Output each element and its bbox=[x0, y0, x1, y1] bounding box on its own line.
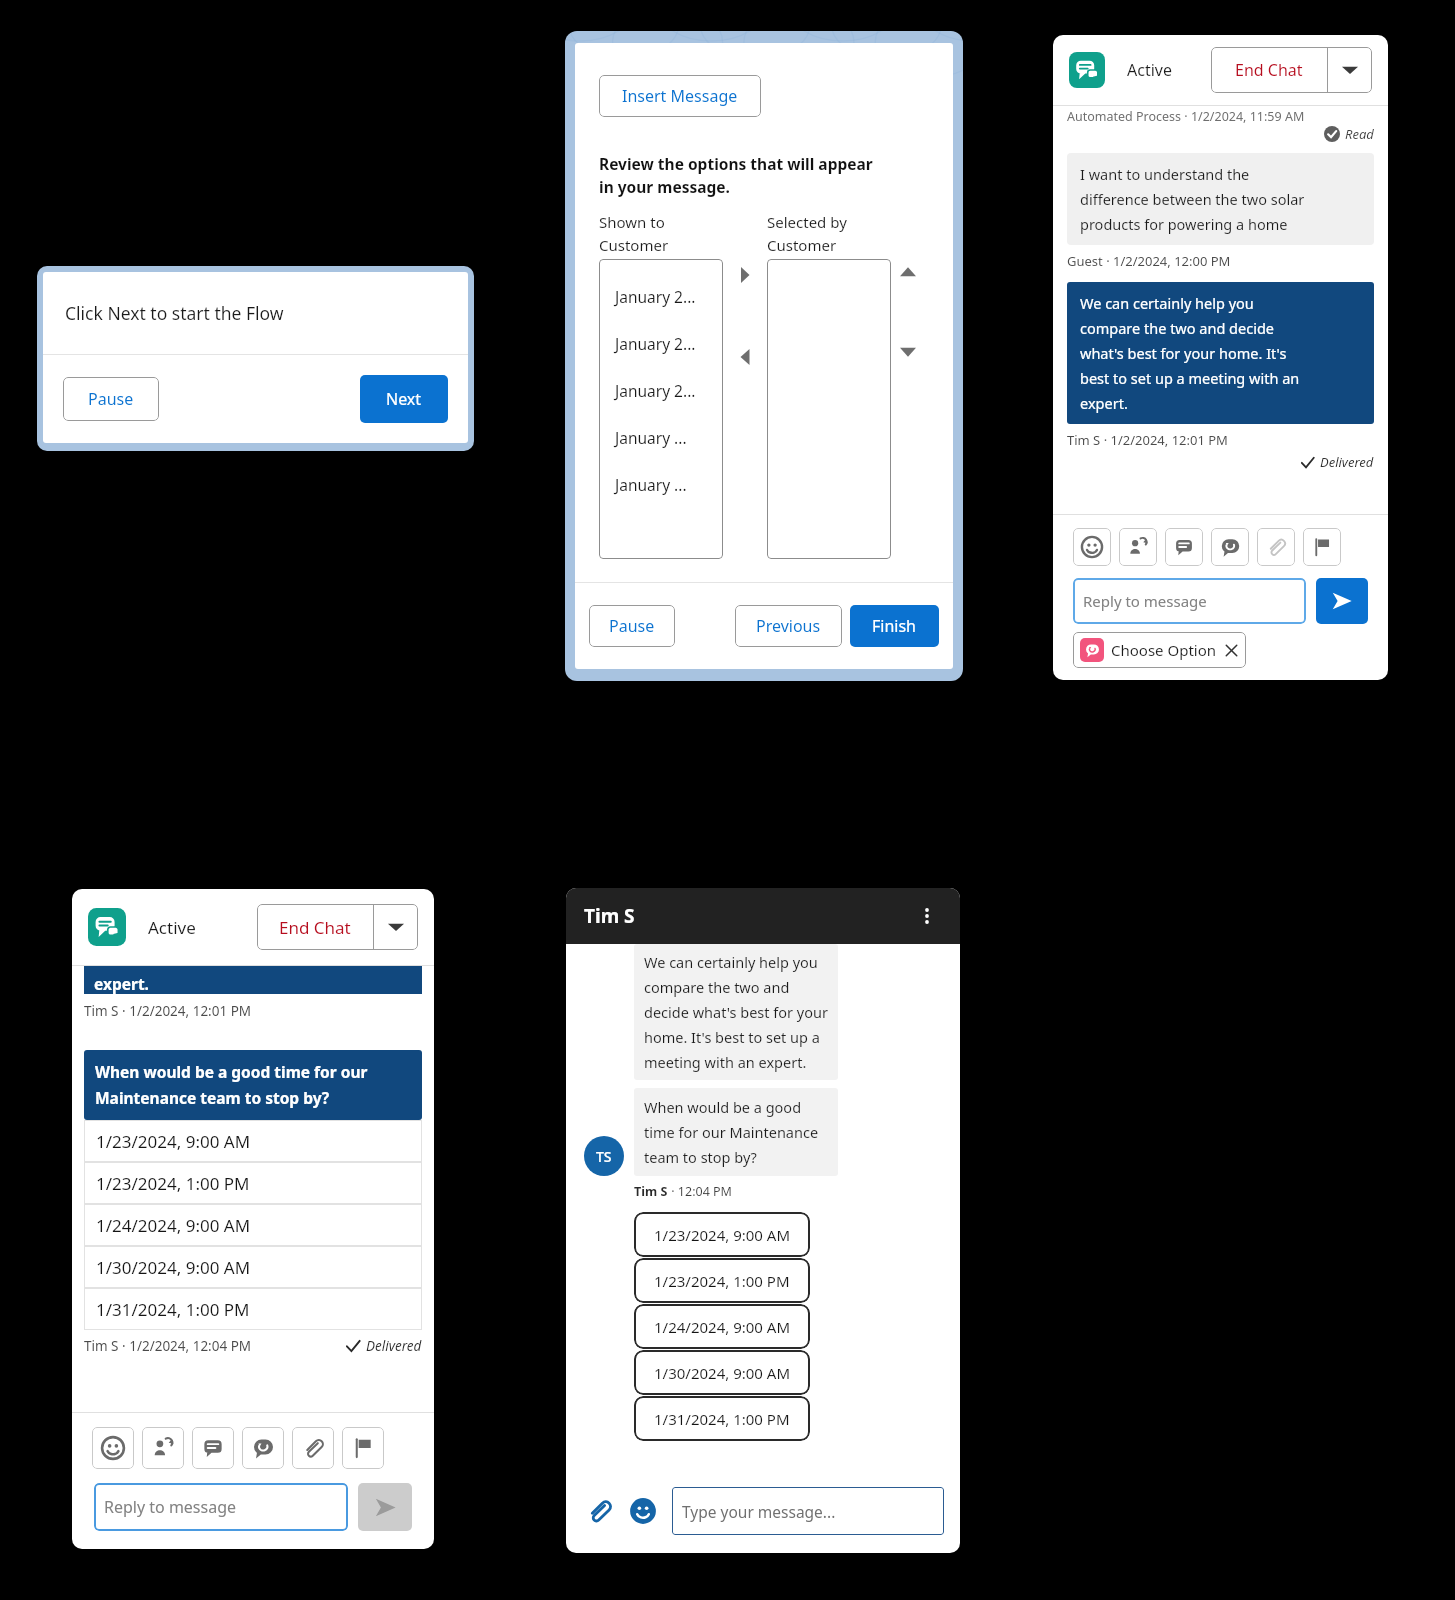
button[interactable]: Reply to message bbox=[104, 1483, 338, 1531]
staticText: 1/24/2024, 9:00 AM bbox=[654, 1317, 790, 1337]
button[interactable]: Previous bbox=[735, 605, 842, 647]
staticText: January 2... bbox=[615, 333, 696, 354]
staticText: Type your message... bbox=[682, 1501, 836, 1522]
button[interactable]: 1/24/2024, 9:00 AM bbox=[634, 1304, 810, 1349]
button[interactable]: 1/23/2024, 9:00 AM bbox=[634, 1212, 810, 1257]
staticText: expert. bbox=[94, 973, 149, 994]
staticText: Reply to message bbox=[1083, 591, 1207, 611]
staticText: 1/24/2024, 9:00 AM bbox=[96, 1214, 251, 1237]
button[interactable]: Flag bbox=[342, 1427, 384, 1469]
button[interactable]: Quick text bbox=[192, 1427, 234, 1469]
staticText: When would be a good time for our Mainte… bbox=[644, 1097, 819, 1167]
button[interactable]: Attach file bbox=[582, 1494, 616, 1528]
staticText: Delivered bbox=[366, 1337, 422, 1355]
staticText: 1/23/2024, 9:00 AM bbox=[654, 1225, 790, 1245]
staticText: Selected by Customer bbox=[767, 212, 847, 255]
staticText: Delivered bbox=[1320, 453, 1374, 471]
staticText: Tim S · 1/2/2024, 12:04 PM bbox=[84, 1337, 252, 1355]
button[interactable]: End Chat bbox=[1211, 47, 1327, 93]
button[interactable]: Next bbox=[360, 375, 448, 423]
staticText: Click Next to start the Flow bbox=[65, 301, 284, 325]
staticText: 1/23/2024, 9:00 AM bbox=[96, 1130, 251, 1153]
staticText: We can certainly help you compare the tw… bbox=[1080, 293, 1300, 413]
button[interactable]: Chat actions bbox=[1211, 528, 1249, 566]
staticText: End Chat bbox=[1235, 59, 1303, 81]
staticText: January 2... bbox=[615, 286, 696, 307]
button[interactable]: January ... bbox=[615, 461, 723, 508]
button[interactable]: Move up bbox=[896, 260, 920, 284]
button[interactable]: 1/23/2024, 9:00 AM bbox=[96, 1120, 422, 1162]
staticText: Automated Process · 1/2/2024, 11:59 AM bbox=[1067, 108, 1305, 125]
staticText: Previous bbox=[756, 615, 821, 637]
staticText: 1/30/2024, 9:00 AM bbox=[96, 1256, 251, 1279]
button[interactable]: 1/31/2024, 1:00 PM bbox=[96, 1288, 422, 1330]
staticText: January ... bbox=[615, 474, 687, 495]
button[interactable]: 1/23/2024, 1:00 PM bbox=[634, 1258, 810, 1303]
button[interactable]: Reply to message bbox=[1083, 578, 1296, 624]
staticText: We can certainly help you compare the tw… bbox=[644, 952, 828, 1072]
staticText: Tim S · 1/2/2024, 12:01 PM bbox=[84, 1002, 252, 1020]
button[interactable]: Finish bbox=[850, 605, 939, 647]
button[interactable]: End Chat bbox=[257, 904, 373, 950]
staticText: 1/30/2024, 9:00 AM bbox=[654, 1363, 790, 1383]
button[interactable]: Attach file bbox=[1257, 528, 1295, 566]
staticText: · 12:04 PM bbox=[668, 1183, 732, 1200]
staticText: 1/23/2024, 1:00 PM bbox=[654, 1271, 790, 1291]
button[interactable]: Quick text bbox=[1165, 528, 1203, 566]
staticText: 1/31/2024, 1:00 PM bbox=[96, 1298, 250, 1321]
button[interactable]: Send bbox=[358, 1483, 412, 1531]
staticText: Tim S bbox=[634, 1183, 668, 1200]
button[interactable]: Emoji bbox=[1073, 528, 1111, 566]
button[interactable]: Move left bbox=[732, 344, 758, 370]
button[interactable]: Emoji bbox=[92, 1427, 134, 1469]
button[interactable]: Pause bbox=[589, 605, 675, 647]
staticText: I want to understand the difference betw… bbox=[1080, 164, 1305, 234]
staticText: TS bbox=[596, 1147, 612, 1166]
staticText: Read bbox=[1345, 125, 1374, 143]
button[interactable]: 1/24/2024, 9:00 AM bbox=[96, 1204, 422, 1246]
button[interactable]: January 2... bbox=[615, 320, 723, 367]
staticText: January ... bbox=[615, 427, 687, 448]
button[interactable]: 1/31/2024, 1:00 PM bbox=[634, 1396, 810, 1441]
button[interactable]: January ... bbox=[615, 414, 723, 461]
button[interactable]: Send bbox=[1316, 578, 1368, 624]
staticText: Reply to message bbox=[104, 1496, 237, 1518]
staticText: Finish bbox=[872, 615, 917, 637]
staticText: Pause bbox=[88, 388, 134, 410]
staticText: January 2... bbox=[615, 380, 696, 401]
staticText: Active bbox=[1127, 59, 1172, 81]
staticText: Active bbox=[148, 916, 196, 939]
staticText: Insert Message bbox=[622, 85, 738, 107]
staticText: End Chat bbox=[279, 916, 351, 939]
button[interactable]: Transfer bbox=[1119, 528, 1157, 566]
button[interactable]: More options bbox=[374, 904, 418, 950]
button[interactable]: Attach file bbox=[292, 1427, 334, 1469]
button[interactable]: 1/23/2024, 1:00 PM bbox=[96, 1162, 422, 1204]
button[interactable]: 1/30/2024, 9:00 AM bbox=[96, 1246, 422, 1288]
staticText: When would be a good time for our Mainte… bbox=[95, 1061, 368, 1109]
staticText: Pause bbox=[609, 615, 655, 637]
button[interactable]: Choose Option bbox=[1080, 632, 1239, 668]
button[interactable]: More options bbox=[1328, 47, 1372, 93]
button[interactable]: 1/30/2024, 9:00 AM bbox=[634, 1350, 810, 1395]
button[interactable]: Flag bbox=[1303, 528, 1341, 566]
button[interactable]: Chat actions bbox=[242, 1427, 284, 1469]
staticText: Tim S bbox=[584, 903, 635, 929]
staticText: 1/31/2024, 1:00 PM bbox=[654, 1409, 790, 1429]
staticText: Shown to Customer bbox=[599, 212, 669, 255]
staticText: Next bbox=[386, 388, 422, 410]
button[interactable]: Emoji bbox=[626, 1494, 660, 1528]
staticText: Review the options that will appear in y… bbox=[599, 153, 873, 198]
staticText: Guest · 1/2/2024, 12:00 PM bbox=[1067, 252, 1231, 270]
button[interactable]: January 2... bbox=[615, 273, 723, 320]
button[interactable]: Pause bbox=[63, 377, 159, 421]
button[interactable]: Transfer bbox=[142, 1427, 184, 1469]
button[interactable]: More options bbox=[912, 901, 942, 931]
button[interactable]: January 2... bbox=[615, 367, 723, 414]
staticText: Choose Option bbox=[1111, 640, 1217, 660]
staticText: 1/23/2024, 1:00 PM bbox=[96, 1172, 250, 1195]
button[interactable]: Move right bbox=[732, 262, 758, 288]
button[interactable]: Insert Message bbox=[599, 75, 761, 117]
button[interactable]: Type your message... bbox=[682, 1487, 934, 1535]
button[interactable]: Move down bbox=[896, 340, 920, 364]
